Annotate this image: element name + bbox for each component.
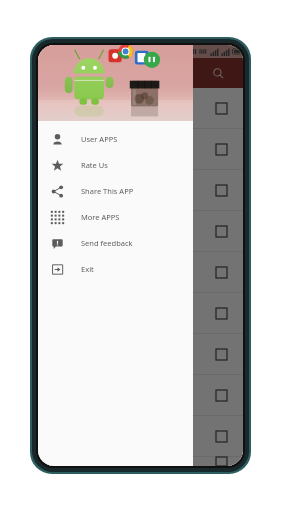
button: User APPS <box>38 45 193 466</box>
staticText: App name <box>82 99 116 109</box>
button[interactable]: App name <box>38 334 243 374</box>
staticText: More APPS <box>81 212 120 222</box>
button[interactable]: App name <box>38 293 243 333</box>
button[interactable]: App name <box>38 88 243 128</box>
staticText: Send feedback <box>81 238 133 248</box>
staticText: App name <box>82 181 116 191</box>
button[interactable]: App name <box>38 211 243 251</box>
staticText: Rate Us <box>81 160 108 170</box>
staticText: com.example.app <box>82 111 124 118</box>
button[interactable]: Select app <box>216 349 227 360</box>
button[interactable]: Select app <box>216 267 227 278</box>
button[interactable]: Send feedback <box>38 230 193 256</box>
button[interactable]: Search <box>207 62 229 84</box>
button[interactable]: Select app <box>216 308 227 319</box>
staticText: Share This APP <box>81 186 134 196</box>
button[interactable]: App name <box>38 457 243 466</box>
button[interactable]: App name <box>38 416 243 456</box>
staticText: User APPS <box>81 134 118 144</box>
button[interactable]: Select app <box>216 431 227 442</box>
button[interactable]: Select app <box>216 390 227 401</box>
button[interactable]: More APPS <box>38 204 193 230</box>
button[interactable]: Select app <box>216 226 227 237</box>
button[interactable]: App name <box>38 375 243 415</box>
button[interactable]: Share This APP <box>38 178 193 204</box>
staticText: com.example.app <box>82 193 124 200</box>
button[interactable]: App name <box>38 129 243 169</box>
button[interactable]: User APPS <box>38 126 193 152</box>
button[interactable]: Select app <box>216 457 227 466</box>
button[interactable]: Rate Us <box>38 152 193 178</box>
button[interactable]: App name <box>38 170 243 210</box>
button[interactable]: Select app <box>216 185 227 196</box>
button[interactable]: Select app <box>216 144 227 155</box>
button[interactable]: Exit <box>38 256 193 282</box>
staticText: Exit <box>81 264 94 274</box>
staticText: App name <box>82 263 116 273</box>
staticText: App name <box>82 140 116 150</box>
button[interactable]: App name <box>38 252 243 292</box>
button[interactable]: Select app <box>216 103 227 114</box>
